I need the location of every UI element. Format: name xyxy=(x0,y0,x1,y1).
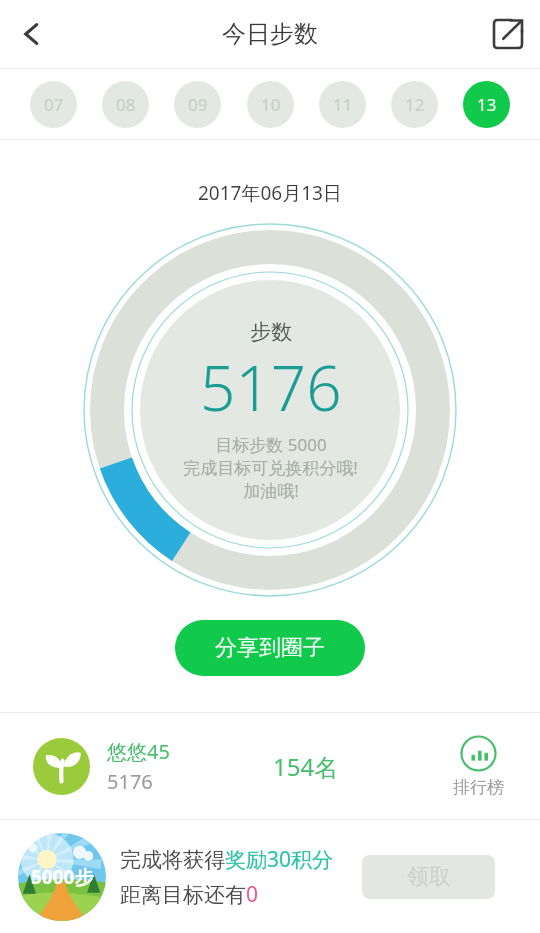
staticText: 5176 xyxy=(107,768,153,795)
button[interactable]: 08 xyxy=(102,81,149,128)
staticText: 分享到圈子 xyxy=(215,634,325,662)
button[interactable]: 10 xyxy=(247,81,294,128)
button[interactable]: 11 xyxy=(319,81,366,128)
button[interactable]: Back xyxy=(0,2,64,66)
staticText: 悠悠45 xyxy=(107,738,170,765)
staticText: 5176 xyxy=(200,345,342,429)
staticText: 排行榜 xyxy=(453,777,504,798)
button[interactable]: 12 xyxy=(391,81,438,128)
staticText: 07 xyxy=(44,93,64,116)
staticText: 距离目标还有0 xyxy=(120,880,259,909)
button[interactable]: 分享到圈子 xyxy=(175,620,365,676)
button[interactable]: 领取 xyxy=(362,855,495,899)
staticText: 12 xyxy=(405,93,425,116)
staticText: 目标步数 5000 xyxy=(215,433,327,456)
staticText: 11 xyxy=(333,93,353,116)
button[interactable]: 07 xyxy=(30,81,77,128)
button[interactable]: 09 xyxy=(174,81,221,128)
staticText: 08 xyxy=(116,93,136,116)
staticText: 加油哦! xyxy=(243,479,299,502)
button[interactable]: 排行榜 xyxy=(453,735,504,798)
staticText: 154名 xyxy=(273,750,339,783)
staticText: 领取 xyxy=(407,863,451,891)
button[interactable]: 悠悠45 xyxy=(0,713,540,819)
staticText: 10 xyxy=(261,93,281,116)
staticText: 13 xyxy=(477,93,497,116)
button[interactable]: 13 xyxy=(463,81,510,128)
button[interactable]: Share xyxy=(476,2,540,66)
staticText: 今日步数 xyxy=(222,19,318,49)
staticText: 5000步 xyxy=(31,864,94,890)
staticText: 09 xyxy=(188,93,208,116)
staticText: 完成目标可兑换积分哦! xyxy=(183,456,358,479)
staticText: 步数 xyxy=(250,319,292,345)
staticText: 2017年06月13日 xyxy=(198,180,342,206)
staticText: 完成将获得奖励30积分 xyxy=(120,845,334,874)
